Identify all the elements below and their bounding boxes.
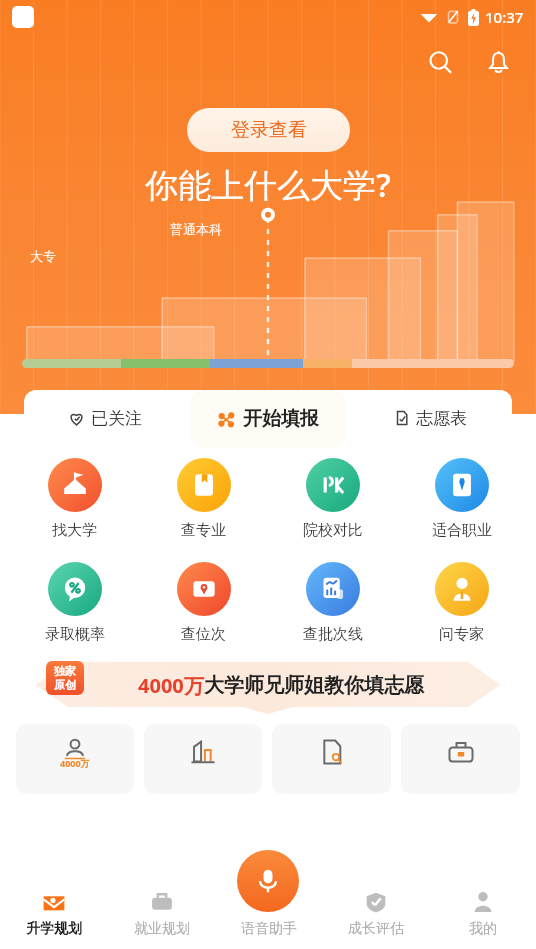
staticText: 4000万: [60, 757, 90, 769]
button[interactable]: Search: [420, 42, 460, 82]
staticText: 升学规划: [26, 920, 82, 938]
button[interactable]: 独家: [18, 656, 518, 714]
button[interactable]: 成长评估: [322, 877, 429, 949]
staticText: 原创: [54, 678, 76, 692]
button[interactable]: 录取概率: [10, 562, 139, 644]
button[interactable]: [272, 724, 391, 794]
button[interactable]: 开始填报: [190, 390, 346, 448]
staticText: 开始填报: [243, 407, 319, 431]
staticText: 问专家: [439, 625, 484, 644]
button[interactable]: 查位次: [139, 562, 268, 644]
staticText: 大学师兄师姐教你填志愿: [204, 673, 424, 698]
staticText: 独家: [54, 664, 76, 678]
staticText: 查批次线: [303, 625, 363, 644]
button[interactable]: [144, 724, 262, 794]
button[interactable]: 适合职业: [397, 458, 526, 540]
staticText: 查专业: [181, 521, 226, 540]
button[interactable]: 问专家: [397, 562, 526, 644]
button[interactable]: Notifications: [478, 42, 518, 82]
staticText: 适合职业: [432, 521, 492, 540]
staticText: 已关注: [91, 408, 142, 429]
button[interactable]: 4000万: [16, 724, 134, 794]
staticText: 大专: [30, 248, 56, 264]
button[interactable]: 查批次线: [268, 562, 397, 644]
button[interactable]: 找大学: [10, 458, 139, 540]
staticText: 登录查看: [231, 118, 307, 142]
staticText: 成长评估: [348, 920, 404, 938]
button[interactable]: 查专业: [139, 458, 268, 540]
button[interactable]: 我的: [429, 877, 536, 949]
button[interactable]: 登录查看: [187, 108, 350, 152]
staticText: 你能上什么大学?: [145, 162, 391, 207]
staticText: 志愿表: [416, 408, 467, 429]
staticText: 4000万: [138, 672, 204, 699]
staticText: 语音助手: [241, 920, 297, 938]
button[interactable]: [401, 724, 520, 794]
button[interactable]: 语音助手: [237, 850, 299, 912]
button[interactable]: 语音助手: [215, 877, 322, 949]
staticText: 普通本科: [170, 221, 222, 237]
staticText: 找大学: [52, 521, 97, 540]
staticText: 查位次: [181, 625, 226, 644]
button[interactable]: 志愿表: [349, 390, 512, 446]
button[interactable]: 升学规划: [0, 877, 108, 949]
staticText: 录取概率: [45, 625, 105, 644]
staticText: 10:37: [485, 7, 524, 27]
staticText: 我的: [469, 920, 497, 938]
button[interactable]: 院校对比: [268, 458, 397, 540]
button[interactable]: 已关注: [24, 390, 186, 446]
button[interactable]: 就业规划: [108, 877, 215, 949]
staticText: 就业规划: [134, 920, 190, 938]
staticText: 院校对比: [303, 521, 363, 540]
